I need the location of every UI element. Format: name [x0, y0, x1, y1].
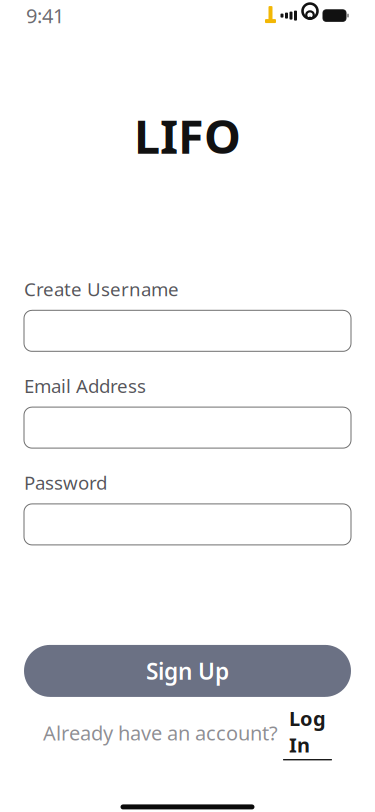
button[interactable]: [24, 407, 351, 448]
staticText: Log In: [289, 705, 326, 758]
button[interactable]: Sign Up: [24, 645, 351, 697]
staticText: 9:41: [26, 2, 64, 29]
staticText: Password: [24, 470, 107, 495]
button[interactable]: Already have an account?: [43, 705, 332, 760]
staticText: Email Address: [24, 373, 146, 398]
button[interactable]: [24, 310, 351, 351]
staticText: Create Username: [24, 276, 179, 301]
button[interactable]: [24, 504, 351, 545]
staticText: Sign Up: [146, 656, 229, 686]
staticText: LIFO: [134, 105, 241, 167]
staticText: Already have an account?: [43, 719, 283, 746]
